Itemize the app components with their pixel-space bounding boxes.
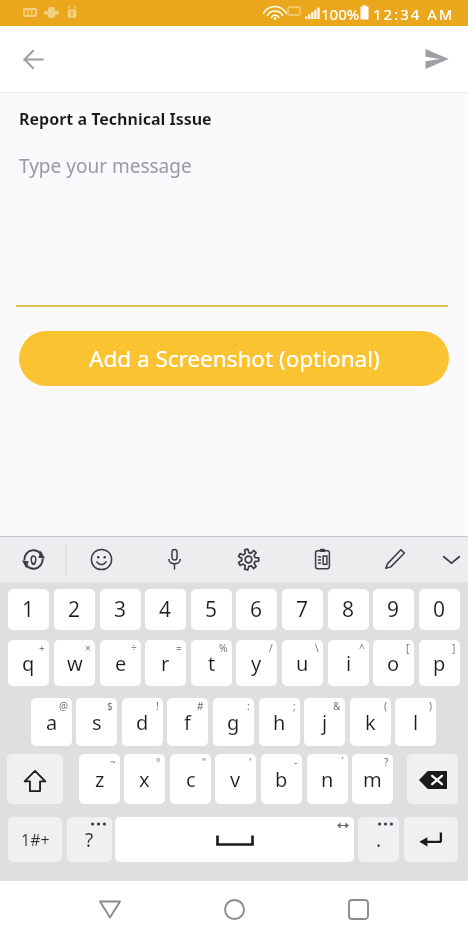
staticText: ÷ <box>131 641 137 655</box>
staticText: ° <box>156 755 161 769</box>
staticText: $ <box>107 699 113 713</box>
staticText: p <box>433 650 446 677</box>
staticText: ^ <box>359 641 365 655</box>
staticText: x <box>139 766 150 793</box>
staticText: ´ <box>341 755 344 769</box>
button[interactable]: . <box>358 817 399 862</box>
button[interactable]: Settings <box>225 537 271 582</box>
staticText: : <box>247 699 250 713</box>
staticText: q <box>22 650 35 677</box>
staticText: f <box>184 709 191 736</box>
staticText: 4 <box>159 595 172 624</box>
staticText: - <box>294 755 298 769</box>
button[interactable]: 1 <box>8 589 49 630</box>
staticText: Type your message <box>19 153 192 179</box>
button[interactable]: t <box>191 640 232 686</box>
button[interactable]: v <box>215 754 256 804</box>
button[interactable]: f <box>167 698 208 746</box>
button[interactable]: 0 <box>419 589 460 630</box>
button[interactable]: 6 <box>236 589 277 630</box>
button[interactable]: w <box>54 640 95 686</box>
button[interactable]: z <box>79 754 120 804</box>
staticText: " <box>202 755 207 769</box>
button[interactable]: n <box>307 754 348 804</box>
button[interactable]: k <box>350 698 391 746</box>
button[interactable]: 2 <box>54 589 95 630</box>
button[interactable]: Hide keyboard <box>428 537 468 582</box>
staticText: / <box>269 641 273 655</box>
button[interactable]: Add a Screenshot (optional) <box>19 331 449 386</box>
staticText: j <box>322 709 328 736</box>
button[interactable]: Shift <box>7 754 63 804</box>
button[interactable]: q <box>8 640 49 686</box>
button[interactable]: ? <box>67 817 112 862</box>
button[interactable]: Enter <box>404 817 458 862</box>
button[interactable]: Home <box>172 881 296 937</box>
staticText: 12:34 AM <box>373 4 455 24</box>
staticText: [ <box>406 641 410 655</box>
button[interactable]: 9 <box>373 589 414 630</box>
button[interactable]: Back <box>48 881 172 937</box>
staticText: n <box>321 766 334 793</box>
button[interactable]: Voice input <box>151 537 197 582</box>
button[interactable]: b <box>261 754 302 804</box>
button[interactable]: Recent apps <box>296 881 420 937</box>
staticText: ? <box>384 755 389 769</box>
staticText: 3 <box>114 595 127 624</box>
staticText: ' <box>249 755 252 769</box>
staticText: Add a Screenshot (optional) <box>89 343 380 374</box>
staticText: t <box>208 650 216 677</box>
staticText: ) <box>429 699 432 713</box>
button[interactable]: 1#+ <box>8 817 62 862</box>
staticText: ; <box>293 699 296 713</box>
button[interactable]: 7 <box>282 589 323 630</box>
button[interactable]: 5 <box>191 589 232 630</box>
button[interactable]: i <box>328 640 369 686</box>
button[interactable]: l <box>395 698 436 746</box>
button[interactable]: r <box>145 640 186 686</box>
button[interactable]: u <box>282 640 323 686</box>
button[interactable]: a <box>31 698 72 746</box>
button[interactable]: Send <box>414 36 460 82</box>
button[interactable]: h <box>259 698 300 746</box>
staticText: \ <box>315 641 319 655</box>
staticText: 100% <box>321 4 360 24</box>
staticText: o <box>387 650 400 677</box>
staticText: v <box>230 766 241 793</box>
staticText: m <box>363 766 382 793</box>
button[interactable]: Back <box>10 36 56 82</box>
button[interactable]: c <box>170 754 211 804</box>
staticText: ! <box>156 699 159 713</box>
staticText: 8 <box>342 595 355 624</box>
staticText: l <box>413 709 419 736</box>
button[interactable]: Backspace <box>407 754 458 804</box>
button[interactable]: d <box>122 698 163 746</box>
button[interactable]: m <box>352 754 393 804</box>
staticText: g <box>227 709 240 736</box>
button[interactable]: o <box>373 640 414 686</box>
staticText: ? <box>85 827 94 853</box>
staticText: 5 <box>205 595 218 624</box>
staticText: Report a Technical Issue <box>19 108 212 130</box>
button[interactable]: Translate <box>10 537 56 582</box>
button[interactable]: p <box>419 640 460 686</box>
button[interactable]: 4 <box>145 589 186 630</box>
button[interactable]: j <box>304 698 345 746</box>
button[interactable]: Handwriting <box>371 537 417 582</box>
staticText: a <box>46 709 58 736</box>
button[interactable]: 8 <box>328 589 369 630</box>
button[interactable]: Emoji <box>78 537 124 582</box>
button[interactable]: g <box>213 698 254 746</box>
button[interactable]: x <box>124 754 165 804</box>
button[interactable]: y <box>236 640 277 686</box>
staticText: & <box>333 699 341 713</box>
button[interactable]: Space <box>115 817 354 862</box>
button[interactable]: s <box>76 698 117 746</box>
button[interactable]: Clipboard <box>299 537 345 582</box>
button[interactable]: 3 <box>100 589 141 630</box>
staticText: 1#+ <box>21 829 50 851</box>
button[interactable]: e <box>100 640 141 686</box>
staticText: 0 <box>433 595 446 624</box>
staticText: 1 <box>22 595 35 624</box>
staticText: r <box>161 650 170 677</box>
